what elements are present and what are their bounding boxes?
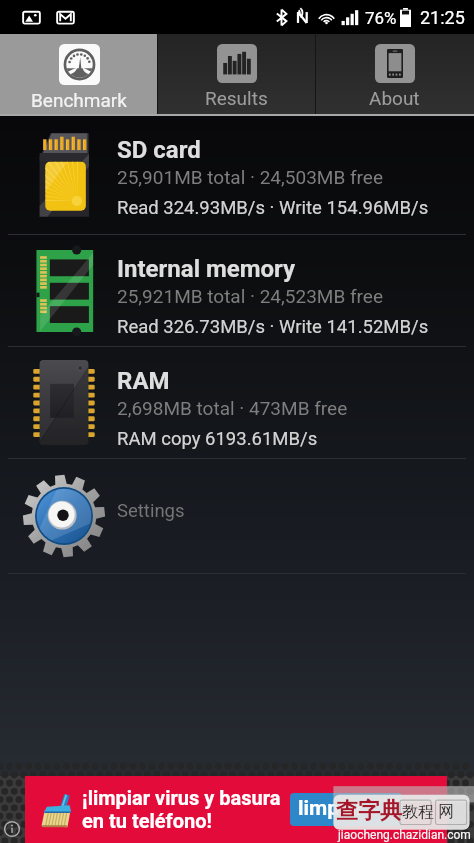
staticText: Settings (117, 500, 185, 522)
staticText: limpiar (298, 796, 364, 821)
staticText: 76% (365, 8, 397, 28)
staticText: 网 (438, 802, 454, 822)
staticText: SD card (117, 136, 201, 164)
button[interactable]: SD card (0, 116, 474, 234)
button[interactable]: Results (157, 34, 315, 114)
button[interactable]: Benchmark (0, 34, 157, 114)
button[interactable]: RAM (0, 347, 474, 458)
staticText: ¡limpiar virus y basura (82, 786, 281, 809)
staticText: About (369, 87, 420, 109)
staticText: 2,698MB total · 473MB free (117, 397, 348, 419)
staticText: 查字典 (336, 797, 402, 825)
button[interactable]: Settings (0, 459, 474, 573)
staticText: RAM copy 6193.61MB/s (117, 428, 318, 450)
staticText: Read 324.93MB/s · Write 154.96MB/s (117, 197, 429, 219)
button[interactable]: limpiar (290, 793, 402, 826)
staticText: Results (205, 87, 268, 109)
staticText: RAM (117, 367, 170, 395)
staticText: Benchmark (31, 89, 127, 111)
staticText: jiaocheng.chazidian.com (338, 828, 471, 842)
staticText: 25,921MB total · 24,523MB free (117, 285, 383, 307)
staticText: Read 326.73MB/s · Write 141.52MB/s (117, 316, 429, 338)
button[interactable]: Internal memory (0, 235, 474, 346)
staticText: 25,901MB total · 24,503MB free (117, 166, 383, 188)
staticText: 21:25 (420, 7, 465, 28)
staticText: en tu teléfono! (82, 809, 212, 832)
staticText: 教程 (402, 802, 434, 822)
staticText: Internal memory (117, 255, 296, 283)
button[interactable]: About (315, 34, 474, 114)
button[interactable]: ¡limpiar virus y basura (25, 776, 447, 843)
other: Ad info (4, 821, 20, 837)
